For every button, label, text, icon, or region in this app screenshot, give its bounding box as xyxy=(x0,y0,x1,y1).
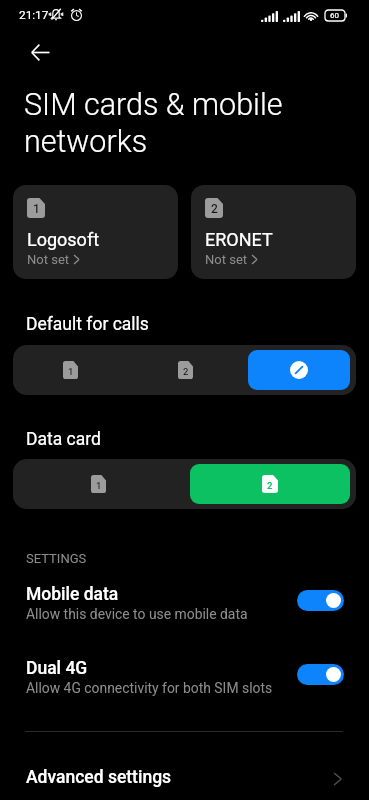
button[interactable]: Dual 4G xyxy=(0,658,369,710)
staticText: 2 xyxy=(183,366,189,377)
button[interactable]: 1 xyxy=(13,185,178,279)
button[interactable]: SIM 2 xyxy=(190,464,350,504)
button[interactable]: Back xyxy=(18,30,62,74)
staticText: 2 xyxy=(267,480,273,491)
staticText: ERONET xyxy=(205,229,273,250)
staticText: SETTINGS xyxy=(26,551,87,566)
button[interactable]: SIM 1 xyxy=(19,350,122,390)
staticText: Data card xyxy=(26,429,101,450)
staticText: Advanced settings xyxy=(26,767,172,788)
staticText: Logosoft xyxy=(27,229,100,250)
staticText: 60 xyxy=(330,11,339,20)
staticText: Default for calls xyxy=(26,314,149,335)
staticText: 1 xyxy=(33,202,40,216)
button[interactable]: Mobile data switch xyxy=(297,590,344,611)
button[interactable]: SIM 2 xyxy=(134,350,236,390)
staticText: 2 xyxy=(211,202,218,216)
button[interactable]: Mobile data xyxy=(0,584,369,636)
button[interactable]: SIM 1 xyxy=(19,464,178,504)
staticText: 1 xyxy=(68,366,74,377)
staticText: 21:17 xyxy=(19,8,49,22)
button[interactable]: Ask every time xyxy=(248,350,350,390)
staticText: Dual 4G xyxy=(26,658,88,679)
staticText: Not set xyxy=(205,252,248,267)
staticText: Allow 4G connectivity for both SIM slots xyxy=(26,680,273,696)
staticText: 1 xyxy=(96,480,102,491)
staticText: SIM cards & mobile networks xyxy=(24,87,314,159)
staticText: Mobile data xyxy=(26,584,119,605)
button[interactable]: Dual 4G switch xyxy=(297,664,344,685)
button[interactable]: 2 xyxy=(191,185,356,279)
button[interactable]: Advanced settings xyxy=(0,755,369,800)
staticText: Allow this device to use mobile data xyxy=(26,606,248,622)
staticText: Not set xyxy=(27,252,70,267)
